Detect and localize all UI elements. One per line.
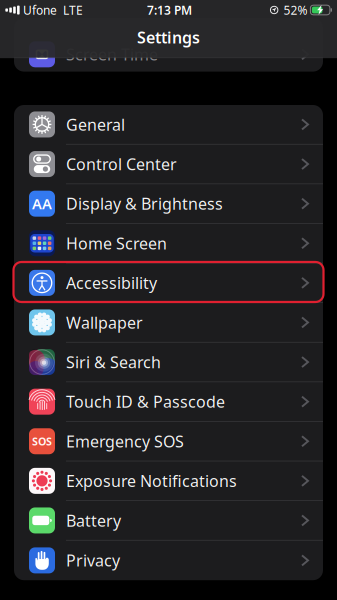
staticText: LTE <box>63 2 83 18</box>
staticText: Siri & Search <box>66 351 161 373</box>
staticText: Battery <box>66 510 121 531</box>
staticText: Wallpaper <box>66 312 143 333</box>
button[interactable]: Siri & Search <box>14 343 323 382</box>
button[interactable]: Touch ID & Passcode <box>14 382 323 422</box>
staticText: Screen Time <box>66 44 158 65</box>
staticText: Accessibility <box>66 272 157 293</box>
staticText: Settings <box>137 27 200 48</box>
button[interactable]: SOS <box>14 422 323 461</box>
staticText: Control Center <box>66 153 177 175</box>
button[interactable]: Home Screen <box>14 224 323 263</box>
button[interactable]: General <box>14 105 323 145</box>
button[interactable]: AA <box>14 184 323 224</box>
staticText: Touch ID & Passcode <box>66 391 225 412</box>
button[interactable]: Control Center <box>14 145 323 184</box>
staticText: 7:13 PM <box>147 2 192 18</box>
staticText: 52% <box>283 2 307 18</box>
button[interactable]: Wallpaper <box>14 303 323 343</box>
staticText: Exposure Notifications <box>66 470 237 491</box>
button[interactable]: Accessibility <box>14 263 323 303</box>
staticText: Home Screen <box>66 233 167 254</box>
staticText: SOS <box>32 434 52 448</box>
button[interactable]: Battery <box>14 501 323 541</box>
button[interactable]: Privacy <box>14 541 323 580</box>
staticText: General <box>66 114 125 135</box>
staticText: Privacy <box>66 550 120 571</box>
staticText: Ufone <box>23 2 57 18</box>
staticText: Display & Brightness <box>66 193 223 214</box>
staticText: Emergency SOS <box>66 431 184 452</box>
button[interactable]: Exposure Notifications <box>14 461 323 501</box>
staticText: AA <box>32 194 52 213</box>
